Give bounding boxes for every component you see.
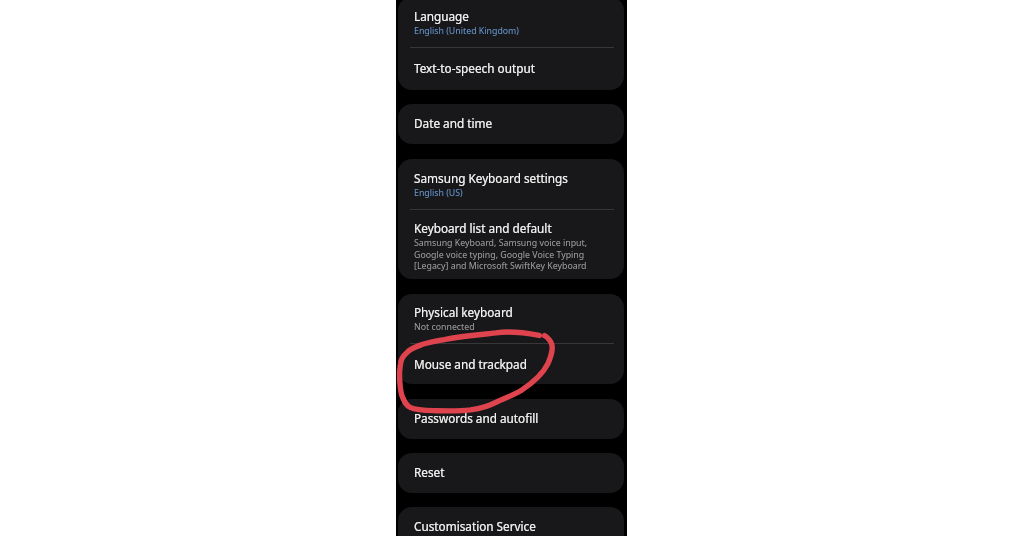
button[interactable]: Customisation Service	[398, 507, 624, 536]
button[interactable]: Mouse and trackpad	[398, 344, 624, 384]
button[interactable]: Language	[398, 0, 624, 47]
staticText: Text-to-speech output	[414, 60, 535, 76]
other: Highlight around Mouse and trackpad	[396, 0, 627, 536]
button[interactable]: Reset	[398, 453, 624, 493]
staticText: Keyboard list and default	[414, 220, 552, 236]
staticText: English (US)	[414, 187, 463, 199]
staticText: Samsung Keyboard, Samsung voice input, G…	[414, 237, 588, 271]
staticText: Mouse and trackpad	[414, 356, 527, 372]
button[interactable]: Keyboard list and default	[398, 210, 624, 279]
staticText: Language	[414, 8, 469, 24]
button[interactable]: Samsung Keyboard settings	[398, 159, 624, 209]
staticText: Reset	[414, 464, 445, 480]
staticText: Not connected	[414, 321, 475, 333]
button[interactable]: Date and time	[398, 104, 624, 144]
staticText: Samsung Keyboard settings	[414, 170, 568, 186]
button[interactable]: Text-to-speech output	[398, 48, 624, 90]
button[interactable]: Physical keyboard	[398, 294, 624, 343]
staticText: Customisation Service	[414, 518, 536, 534]
button[interactable]: Passwords and autofill	[398, 399, 624, 439]
staticText: Date and time	[414, 115, 493, 131]
staticText: Passwords and autofill	[414, 410, 539, 426]
staticText: English (United Kingdom)	[414, 25, 519, 37]
staticText: Physical keyboard	[414, 304, 513, 320]
